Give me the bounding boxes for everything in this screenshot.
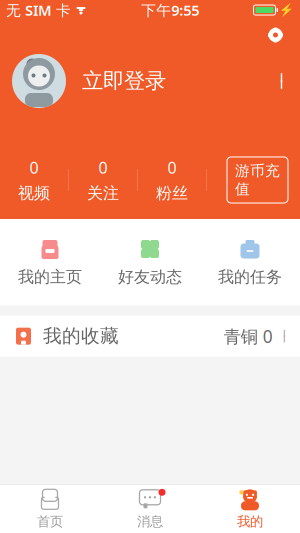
button[interactable]: 立即登录 bbox=[0, 50, 300, 112]
staticText: 消息 bbox=[137, 513, 163, 530]
button[interactable]: 我的任务 bbox=[200, 226, 300, 299]
staticText: 0 bbox=[167, 157, 176, 178]
staticText: 好友动态 bbox=[118, 267, 182, 287]
staticText: 我的任务 bbox=[218, 267, 282, 287]
staticText: 下午9:55 bbox=[141, 0, 199, 20]
staticText: 视频 bbox=[18, 183, 50, 203]
staticText: 首页 bbox=[37, 513, 63, 530]
button[interactable]: 我的 bbox=[200, 482, 300, 533]
staticText: 粉丝 bbox=[156, 183, 188, 203]
staticText: 我的收藏 bbox=[43, 325, 119, 348]
button[interactable]: 我的收藏 bbox=[0, 316, 300, 357]
staticText: 0 bbox=[98, 157, 107, 178]
button[interactable]: 首页 bbox=[0, 482, 100, 533]
staticText: ⚡ bbox=[279, 3, 294, 17]
button[interactable]: 好友动态 bbox=[100, 226, 200, 299]
staticText: 立即登录 bbox=[82, 68, 166, 94]
staticText: 无 SIM 卡 bbox=[6, 0, 71, 20]
button[interactable]: Settings bbox=[259, 18, 292, 51]
button[interactable]: 消息 bbox=[100, 482, 200, 533]
staticText: 我的 bbox=[237, 513, 263, 530]
staticText: 我的主页 bbox=[18, 267, 82, 287]
staticText: 关注 bbox=[87, 183, 119, 203]
staticText: 青铜 0 bbox=[224, 325, 273, 348]
button[interactable]: 我的主页 bbox=[0, 226, 100, 299]
button[interactable]: 游币充值 bbox=[227, 157, 288, 203]
staticText: 游币充值 bbox=[235, 162, 280, 198]
staticText: 0 bbox=[29, 157, 38, 178]
